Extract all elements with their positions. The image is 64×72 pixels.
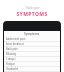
button[interactable]: Cramps bbox=[4, 57, 60, 62]
staticText: Track your bbox=[25, 6, 40, 10]
button[interactable]: Acne breakout bbox=[4, 42, 60, 47]
button[interactable]: Abdominal pain bbox=[4, 37, 60, 42]
staticText: Bloating bbox=[6, 52, 17, 56]
staticText: Abdominal pain bbox=[6, 37, 26, 41]
button[interactable]: Headache bbox=[4, 67, 60, 72]
staticText: Acne breakout bbox=[6, 42, 24, 46]
staticText: Fatigue bbox=[6, 62, 16, 66]
button[interactable]: Fatigue bbox=[4, 62, 60, 67]
staticText: Headache bbox=[6, 67, 19, 71]
staticText: Back pain bbox=[6, 47, 18, 51]
staticText: Symptoms bbox=[24, 32, 40, 36]
staticText: SYMPTOMS bbox=[16, 11, 48, 18]
button[interactable]: Bloating bbox=[4, 52, 60, 57]
staticText: Cramps bbox=[6, 57, 16, 61]
button[interactable]: Symptoms bbox=[4, 31, 60, 37]
button[interactable]: Back pain bbox=[4, 47, 60, 52]
